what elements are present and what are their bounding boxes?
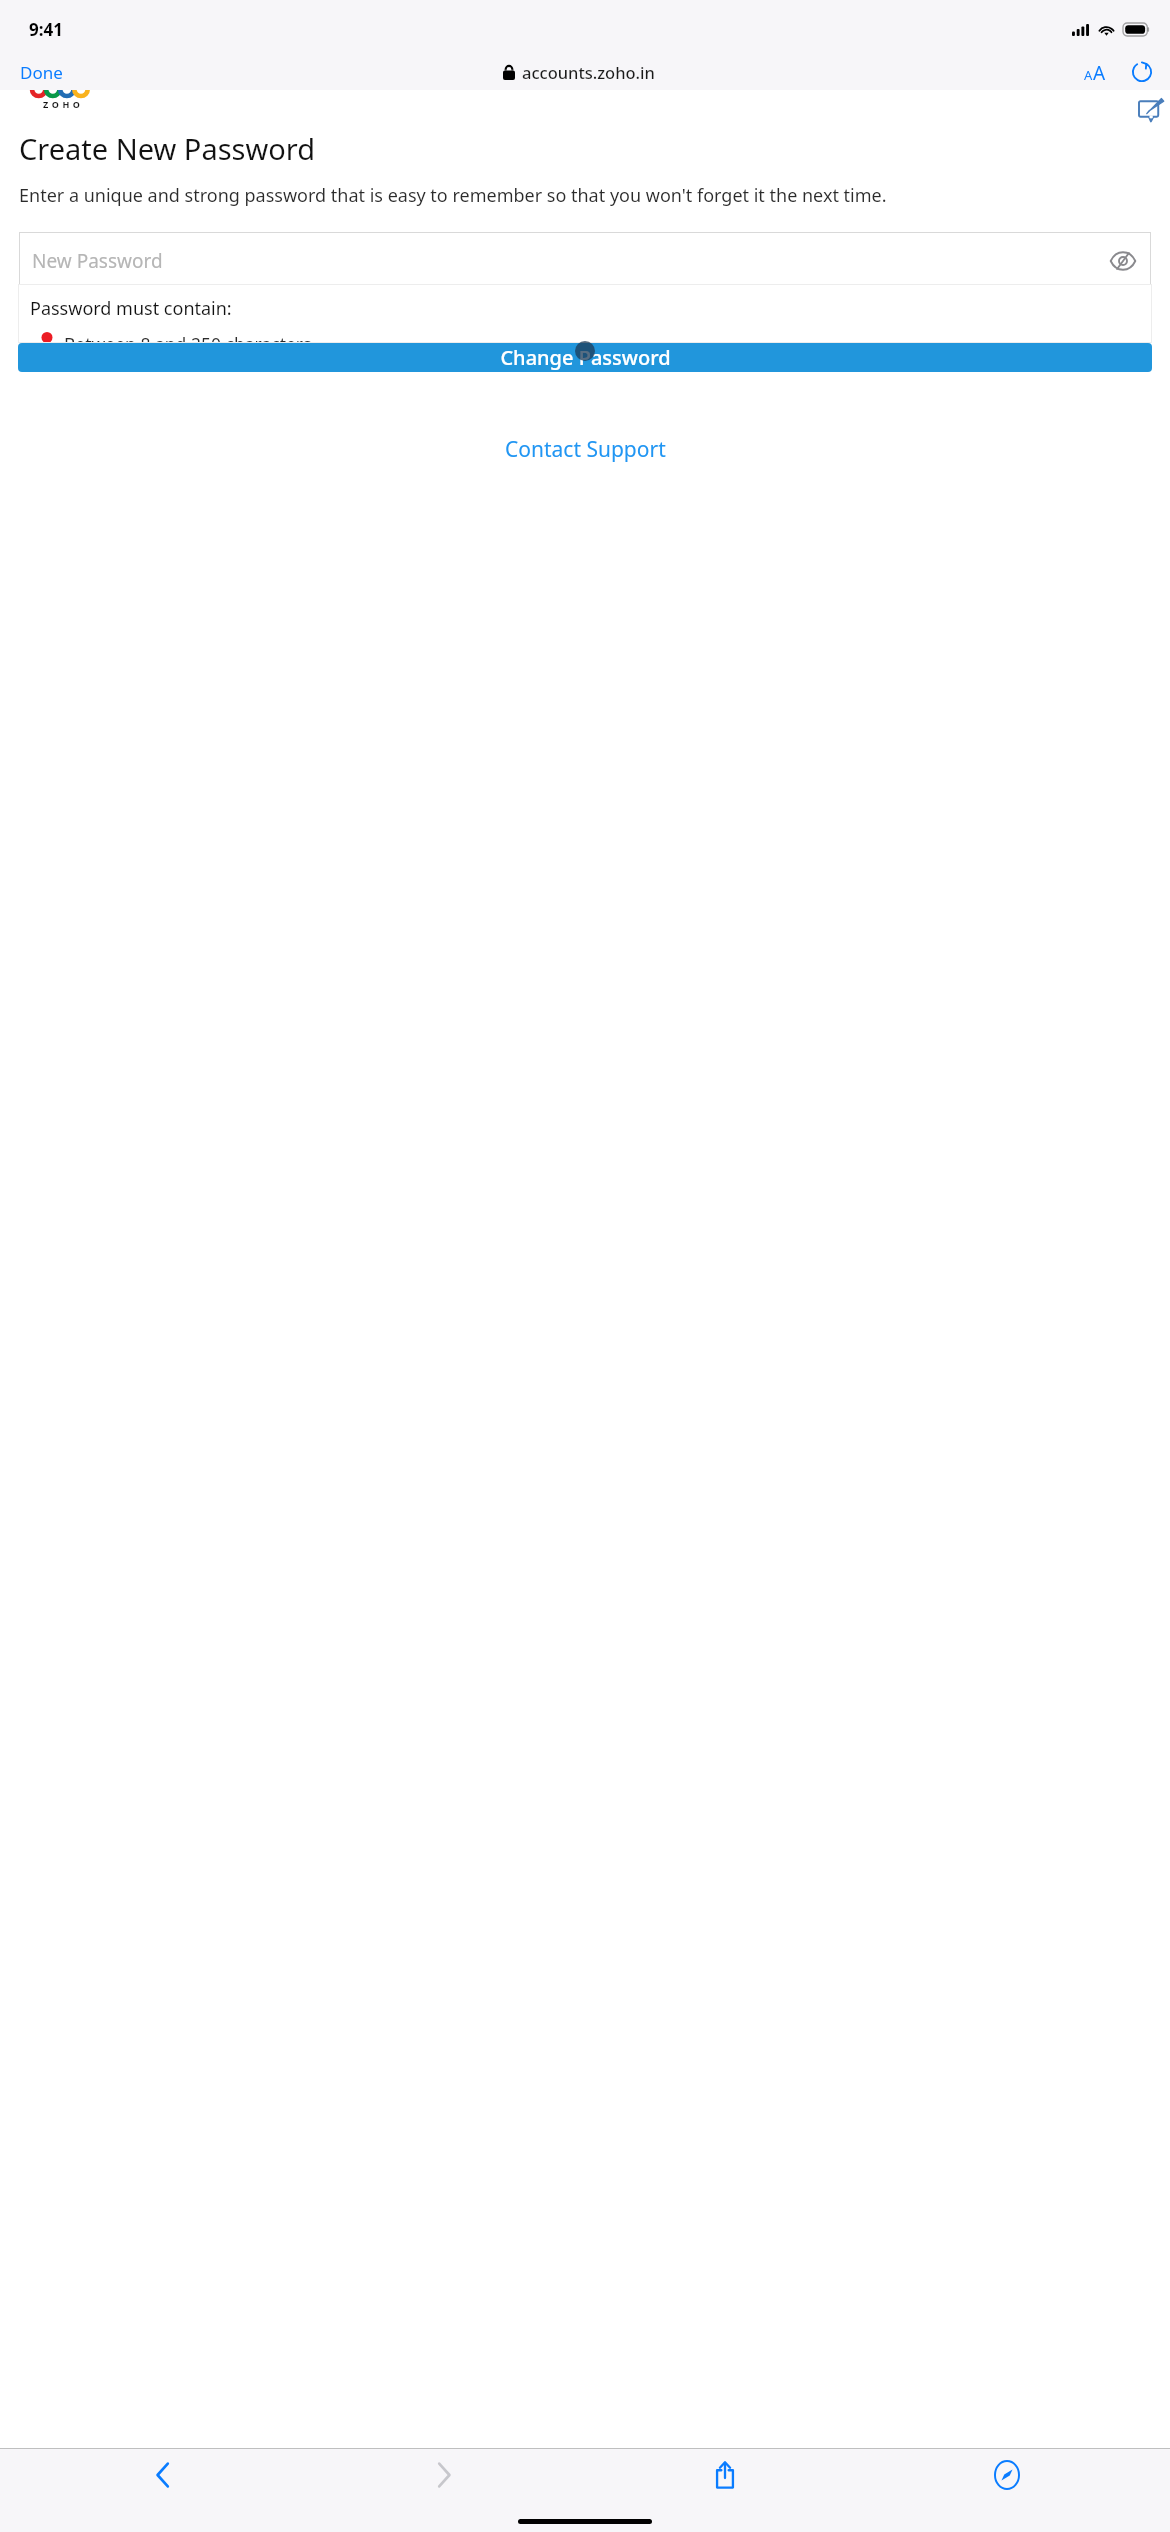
button[interactable]: Back (22, 2449, 303, 2501)
staticText: Between 8 and 250 characters (64, 332, 312, 343)
staticText: A (1093, 60, 1106, 84)
button[interactable]: Done (10, 57, 73, 88)
staticText: Z O H O (43, 98, 81, 110)
button[interactable]: Reload page (1126, 56, 1158, 88)
staticText: Password must contain: (30, 296, 232, 321)
button[interactable]: Forward (303, 2449, 584, 2501)
staticText: 9:41 (29, 18, 63, 41)
button[interactable]: Send feedback (1135, 92, 1168, 128)
staticText: New Password (32, 248, 163, 274)
button[interactable]: Share (584, 2449, 866, 2501)
staticText: Change Password (500, 344, 671, 371)
button[interactable]: Show password (1105, 247, 1141, 275)
staticText: Create New Password (19, 129, 316, 168)
staticText: Contact Support (505, 435, 666, 464)
button[interactable]: Open in Safari (866, 2449, 1148, 2501)
button[interactable]: Contact Support (497, 431, 674, 468)
staticText: Done (20, 61, 63, 84)
button[interactable]: New Password (19, 232, 1151, 289)
staticText: A (1084, 66, 1093, 84)
staticText: accounts.zoho.in (522, 61, 655, 83)
button[interactable]: Change Password (18, 343, 1152, 372)
button[interactable]: Text size options (1078, 54, 1112, 90)
staticText: Enter a unique and strong password that … (19, 183, 887, 208)
